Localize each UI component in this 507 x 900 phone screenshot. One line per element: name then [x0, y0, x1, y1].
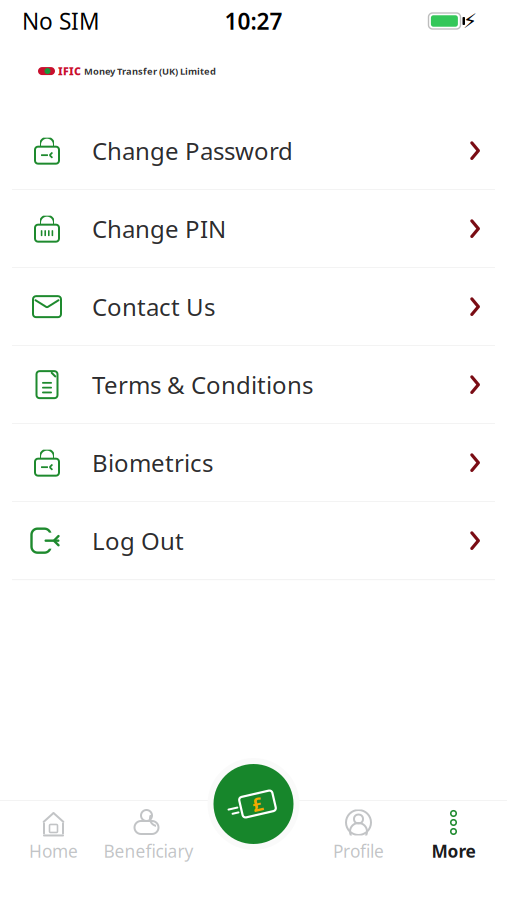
staticText: Terms & Conditions [92, 369, 313, 401]
button[interactable]: More [406, 807, 501, 865]
button[interactable]: Beneficiary [101, 807, 196, 865]
staticText: No SIM [22, 6, 100, 36]
staticText: 10:27 [224, 6, 282, 36]
button[interactable]: Terms & Conditions [0, 346, 507, 423]
staticText: £ [252, 792, 263, 816]
button[interactable]: Profile [311, 807, 406, 865]
button[interactable]: Contact Us [0, 268, 507, 345]
staticText: Contact Us [92, 291, 215, 323]
staticText: Biometrics [92, 447, 213, 479]
button[interactable]: Send Money [205, 756, 301, 852]
staticText: More [431, 839, 475, 862]
staticText: Change Password [92, 135, 293, 167]
staticText: Money Transfer (UK) Limited [84, 65, 216, 77]
staticText: Change PIN [92, 213, 226, 245]
staticText: IFIC [58, 64, 81, 78]
staticText: Profile [333, 839, 384, 862]
button[interactable]: Change Password [0, 112, 507, 189]
button[interactable]: Home [6, 807, 101, 865]
staticText: Home [29, 839, 78, 862]
button[interactable]: Log Out [0, 502, 507, 579]
button[interactable]: Change PIN [0, 190, 507, 267]
button[interactable]: Biometrics [0, 424, 507, 501]
staticText: Log Out [92, 525, 184, 557]
staticText: Beneficiary [103, 839, 193, 862]
staticText: ⚡︎ [463, 10, 477, 32]
